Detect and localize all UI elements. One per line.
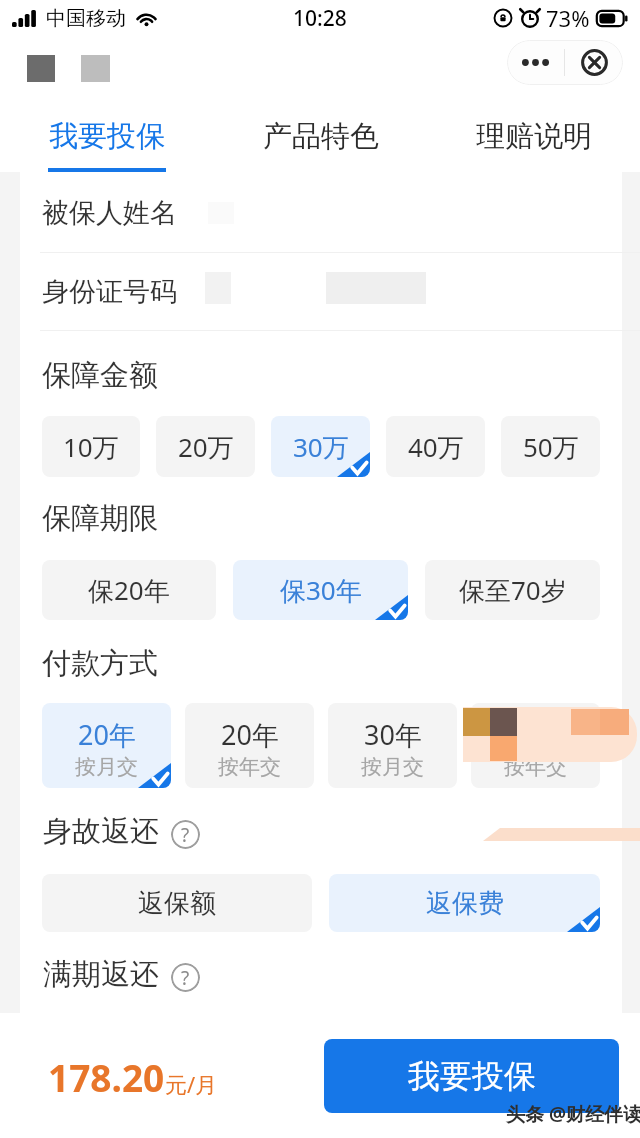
button[interactable]: 保至70岁	[425, 560, 600, 620]
staticText: 30年	[364, 716, 422, 753]
staticText: 被保人姓名	[42, 196, 177, 230]
staticText: 产品特色	[263, 118, 379, 155]
staticText: 我要投保	[408, 1056, 536, 1096]
staticText: ?	[181, 965, 190, 991]
staticText: 50万	[523, 429, 579, 465]
staticText: 身份证号码	[42, 275, 177, 309]
staticText: 30年	[507, 716, 565, 753]
button[interactable]: 返保费	[329, 874, 600, 932]
staticText: 按月交	[361, 754, 424, 780]
button[interactable]: More options	[507, 40, 564, 85]
button[interactable]: 30万	[271, 416, 370, 477]
button[interactable]: 我要投保	[324, 1039, 619, 1113]
button[interactable]: 50万	[501, 416, 600, 477]
button[interactable]: Help	[171, 963, 200, 992]
button[interactable]: 20年	[185, 703, 314, 788]
button[interactable]: Close	[565, 40, 623, 85]
staticText: 付款方式	[42, 645, 158, 682]
button[interactable]: 30年	[471, 703, 600, 788]
staticText: 保30年	[280, 572, 362, 608]
button[interactable]: 30年	[328, 703, 457, 788]
staticText: 我要投保	[49, 118, 165, 155]
staticText: 10万	[63, 429, 119, 465]
staticText: 返保费	[426, 887, 504, 920]
button[interactable]: 20年	[42, 703, 171, 788]
staticText: 按月交	[75, 754, 138, 780]
button[interactable]: 保20年	[42, 560, 216, 620]
staticText: 保20年	[88, 572, 170, 608]
staticText: 按年交	[504, 754, 567, 780]
staticText: 身故返还	[43, 813, 159, 850]
staticText: 保至70岁	[459, 572, 567, 608]
button[interactable]: 10万	[42, 416, 140, 477]
staticText: 40万	[408, 429, 464, 465]
staticText: 返保额	[138, 887, 216, 920]
button[interactable]: 40万	[386, 416, 485, 477]
staticText: 按年交	[218, 754, 281, 780]
staticText: 10:28	[293, 4, 347, 33]
staticText: 满期返还	[43, 956, 159, 993]
staticText: 中国移动	[46, 6, 126, 31]
staticText: ?	[181, 822, 190, 848]
button[interactable]: 产品特色	[214, 100, 427, 172]
staticText: 保障期限	[42, 500, 158, 537]
staticText: 20年	[78, 716, 136, 753]
staticText: 保障金额	[42, 357, 158, 394]
button[interactable]: 20万	[156, 416, 255, 477]
staticText: 头条 @财经伴读	[506, 1101, 640, 1127]
staticText: 元/月	[165, 1069, 218, 1099]
staticText: 理赔说明	[476, 118, 592, 155]
button[interactable]: 理赔说明	[427, 100, 640, 172]
button[interactable]: 我要投保	[0, 100, 214, 172]
staticText: 178.20	[48, 1052, 165, 1102]
staticText: 73%	[546, 3, 590, 33]
staticText: 30万	[293, 429, 349, 465]
staticText: 20年	[221, 716, 279, 753]
button[interactable]: Help	[171, 820, 200, 849]
button[interactable]: 返保额	[42, 874, 312, 932]
button[interactable]: 保30年	[233, 560, 408, 620]
staticText: 20万	[178, 429, 234, 465]
